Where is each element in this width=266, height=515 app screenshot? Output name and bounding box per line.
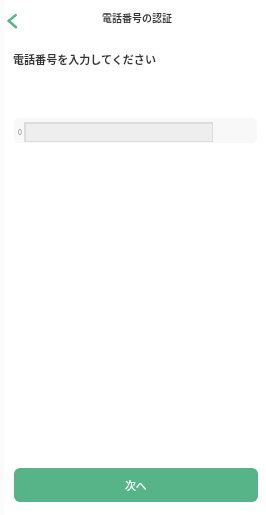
staticText: 0 <box>18 127 22 137</box>
staticText: 電話番号を入力してください <box>13 51 156 67</box>
button[interactable]: 次へ <box>14 468 258 502</box>
staticText: 電話番号の認証 <box>102 10 172 24</box>
button[interactable]: Back <box>2 7 30 35</box>
staticText: 次へ <box>125 477 147 493</box>
button[interactable]: 0 <box>14 118 257 143</box>
